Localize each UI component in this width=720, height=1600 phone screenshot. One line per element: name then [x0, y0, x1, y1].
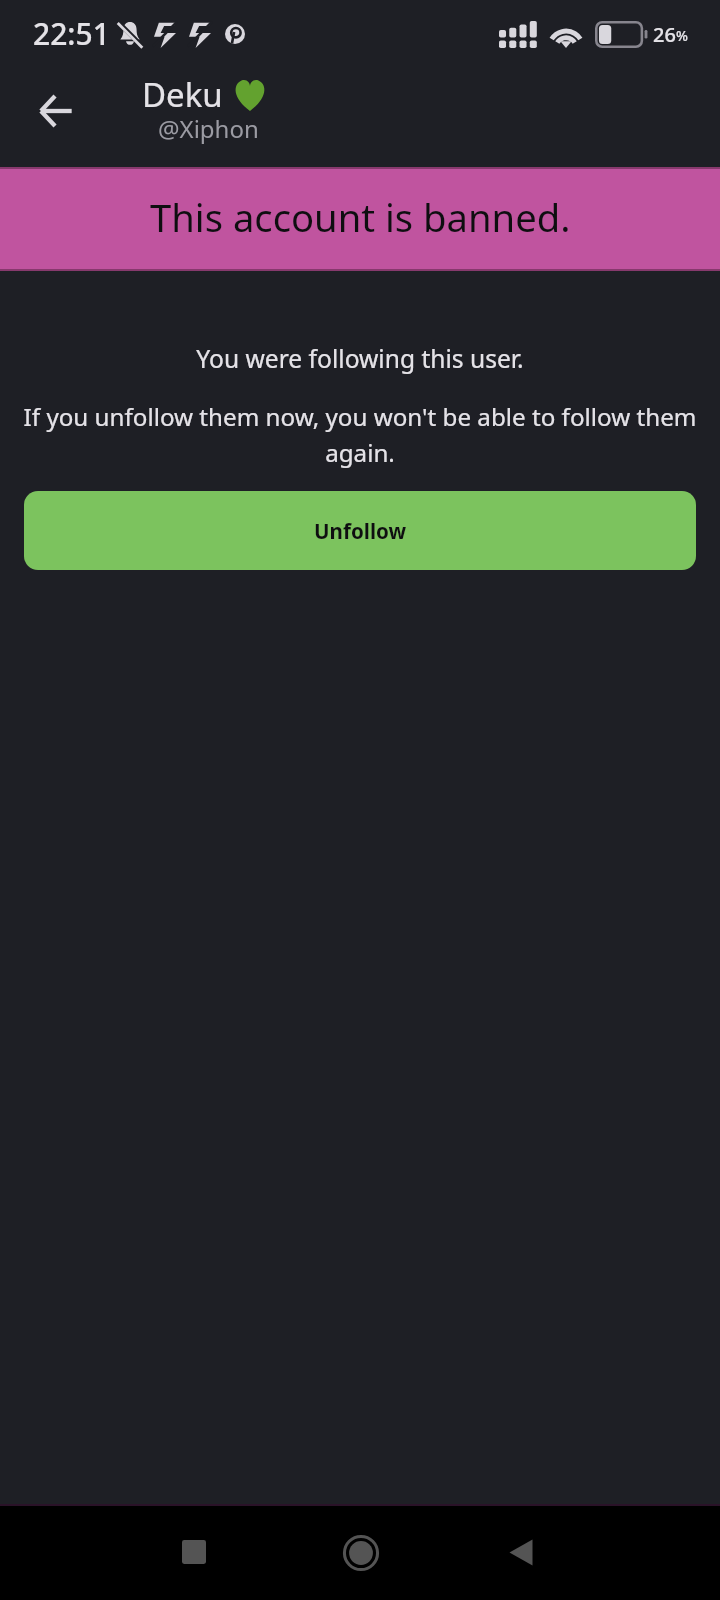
- button[interactable]: Home: [323, 1515, 399, 1591]
- staticText: 22:51: [33, 13, 110, 54]
- staticText: Unfollow: [314, 517, 407, 545]
- staticText: This account is banned.: [150, 191, 571, 243]
- staticText: @Xiphon: [158, 112, 259, 145]
- staticText: You were following this user.: [0, 342, 720, 376]
- staticText: 26%: [653, 21, 688, 48]
- button[interactable]: Back: [489, 1520, 553, 1584]
- button[interactable]: Unfollow: [24, 491, 696, 570]
- button[interactable]: Deku: [142, 72, 267, 117]
- staticText: If you unfollow them now, you won't be a…: [18, 400, 702, 469]
- button[interactable]: Recent apps: [162, 1520, 226, 1584]
- staticText: Deku: [142, 72, 223, 117]
- button[interactable]: Back: [28, 83, 84, 139]
